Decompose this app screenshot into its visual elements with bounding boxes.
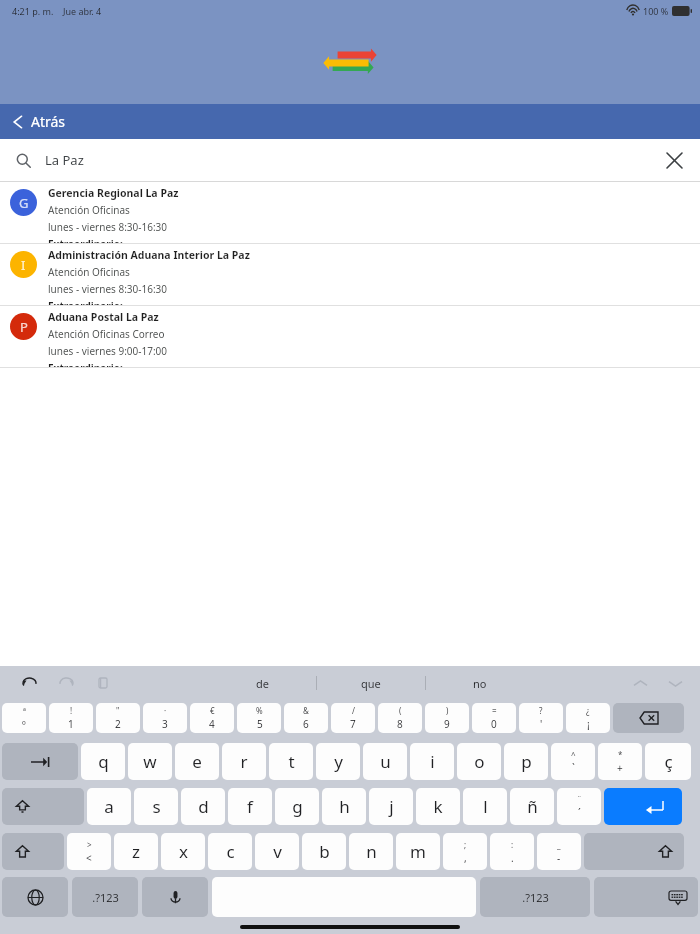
button[interactable]: (	[378, 703, 422, 733]
button[interactable]: j	[369, 788, 413, 825]
button[interactable]: .?123	[480, 877, 590, 917]
staticText: v	[273, 840, 282, 863]
button[interactable]: ;	[443, 833, 487, 870]
button[interactable]: Siguiente	[662, 670, 688, 696]
button[interactable]: Intro	[604, 788, 682, 825]
staticText: e	[192, 750, 202, 773]
button[interactable]: ¿	[566, 703, 610, 733]
button[interactable]: m	[396, 833, 440, 870]
staticText: lunes - viernes 8:30-16:30	[48, 282, 168, 296]
button[interactable]: q	[81, 743, 125, 780]
staticText: La Paz	[45, 151, 84, 169]
staticText: p	[521, 750, 532, 773]
staticText: s	[152, 795, 161, 818]
staticText: c	[226, 840, 235, 863]
button[interactable]: k	[416, 788, 460, 825]
button[interactable]: "	[96, 703, 140, 733]
button[interactable]: ª	[2, 703, 46, 733]
button[interactable]: Rehacer	[53, 670, 79, 696]
staticText: `	[572, 761, 575, 775]
button[interactable]: Buscar	[10, 147, 36, 173]
button[interactable]: w	[128, 743, 172, 780]
button[interactable]: p	[504, 743, 548, 780]
staticText: m	[410, 840, 426, 863]
staticText: Administración Aduana Interior La Paz	[48, 248, 250, 262]
button[interactable]: Portapapeles	[90, 670, 116, 696]
button[interactable]: h	[322, 788, 366, 825]
button[interactable]: .?123	[72, 877, 138, 917]
button[interactable]: :	[490, 833, 534, 870]
button[interactable]: u	[363, 743, 407, 780]
button[interactable]: Deshacer	[16, 670, 42, 696]
staticText: %	[256, 705, 263, 716]
button[interactable]: c	[208, 833, 252, 870]
button[interactable]: /	[331, 703, 375, 733]
button[interactable]: Borrar	[660, 146, 688, 174]
button[interactable]: a	[87, 788, 131, 825]
button[interactable]: &	[284, 703, 328, 733]
button[interactable]: Atrás	[12, 112, 66, 131]
staticText: Atención Oficinas Correo	[48, 327, 165, 341]
staticText: I	[21, 256, 26, 274]
button[interactable]: ^	[551, 743, 595, 780]
staticText: 8	[397, 717, 403, 731]
button[interactable]: )	[425, 703, 469, 733]
button[interactable]: t	[269, 743, 313, 780]
button[interactable]: *	[598, 743, 642, 780]
button[interactable]: ñ	[510, 788, 554, 825]
button[interactable]: o	[457, 743, 501, 780]
staticText: w	[143, 750, 157, 773]
button[interactable]: g	[275, 788, 319, 825]
button[interactable]: Mayúsculas	[2, 833, 64, 870]
button[interactable]: ?	[519, 703, 563, 733]
button[interactable]: i	[410, 743, 454, 780]
staticText: n	[366, 840, 377, 863]
button[interactable]: de	[208, 666, 316, 700]
button[interactable]: v	[255, 833, 299, 870]
button[interactable]: s	[134, 788, 178, 825]
button[interactable]: I	[0, 244, 700, 305]
staticText: +	[617, 761, 623, 775]
button[interactable]: f	[228, 788, 272, 825]
button[interactable]: ¨	[557, 788, 601, 825]
other: Logo	[319, 41, 381, 85]
button[interactable]: Retroceso	[613, 703, 684, 733]
staticText: 9	[444, 717, 450, 731]
button[interactable]: Ocultar teclado	[594, 877, 698, 917]
button[interactable]: e	[175, 743, 219, 780]
button[interactable]: %	[237, 703, 281, 733]
button[interactable]: P	[0, 306, 700, 367]
staticText: >	[87, 839, 92, 850]
button[interactable]: Tabulador	[2, 743, 78, 780]
button[interactable]: =	[472, 703, 516, 733]
button[interactable]: Voz	[142, 877, 208, 917]
staticText: º	[22, 717, 26, 731]
button[interactable]: que	[317, 666, 425, 700]
button[interactable]: ·	[143, 703, 187, 733]
button[interactable]: z	[114, 833, 158, 870]
button[interactable]: ç	[645, 743, 691, 780]
button[interactable]: _	[537, 833, 581, 870]
button[interactable]: x	[161, 833, 205, 870]
staticText: h	[339, 795, 350, 818]
staticText: G	[19, 194, 29, 212]
button[interactable]: b	[302, 833, 346, 870]
button[interactable]: G	[0, 182, 700, 243]
button[interactable]: n	[349, 833, 393, 870]
staticText: Atención Oficinas	[48, 203, 130, 217]
button[interactable]: l	[463, 788, 507, 825]
button[interactable]: Anterior	[627, 670, 653, 696]
button[interactable]: y	[316, 743, 360, 780]
staticText: ¡	[587, 717, 590, 731]
button[interactable]: €	[190, 703, 234, 733]
button[interactable]: >	[67, 833, 111, 870]
button[interactable]: Mayúsculas derecha	[584, 833, 684, 870]
button[interactable]: r	[222, 743, 266, 780]
button[interactable]: !	[49, 703, 93, 733]
button[interactable]: Bloq Mayús	[2, 788, 84, 825]
staticText: k	[433, 795, 443, 818]
button[interactable]: d	[181, 788, 225, 825]
button[interactable]: Idioma	[2, 877, 68, 917]
button[interactable]: no	[426, 666, 534, 700]
